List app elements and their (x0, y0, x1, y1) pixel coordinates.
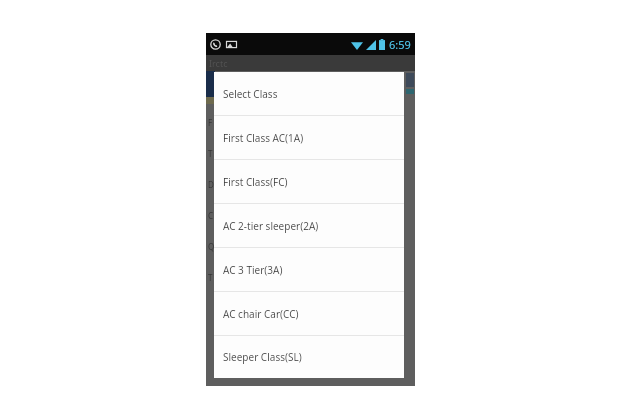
staticText: AC 2-tier sleeper(2A) (223, 219, 319, 233)
staticText: First Class AC(1A) (223, 131, 304, 145)
other: Gallery notification (226, 39, 237, 50)
staticText: AC 3 Tier(3A) (223, 263, 283, 277)
button[interactable]: AC 3 Tier(3A) (214, 248, 404, 292)
staticText: Sleeper Class(SL) (223, 350, 302, 364)
button[interactable]: Select Class (214, 72, 404, 116)
staticText: F (208, 117, 213, 128)
staticText: T (208, 272, 213, 283)
staticText: Q (208, 241, 215, 252)
staticText: AC chair Car(CC) (223, 307, 299, 321)
staticText: T (208, 148, 213, 159)
button[interactable]: Sleeper Class(SL) (214, 336, 404, 378)
button[interactable]: First Class AC(1A) (214, 116, 404, 160)
staticText: First Class(FC) (223, 175, 288, 189)
other: WhatsApp notification (210, 39, 221, 50)
staticText: Irctc (209, 57, 228, 69)
staticText: C (208, 210, 214, 221)
staticText: Select Class (223, 87, 278, 101)
button[interactable]: First Class(FC) (214, 160, 404, 204)
button[interactable]: AC 2-tier sleeper(2A) (214, 204, 404, 248)
staticText: 6:59 (389, 37, 411, 52)
button[interactable]: AC chair Car(CC) (214, 292, 404, 336)
staticText: D (208, 179, 214, 190)
